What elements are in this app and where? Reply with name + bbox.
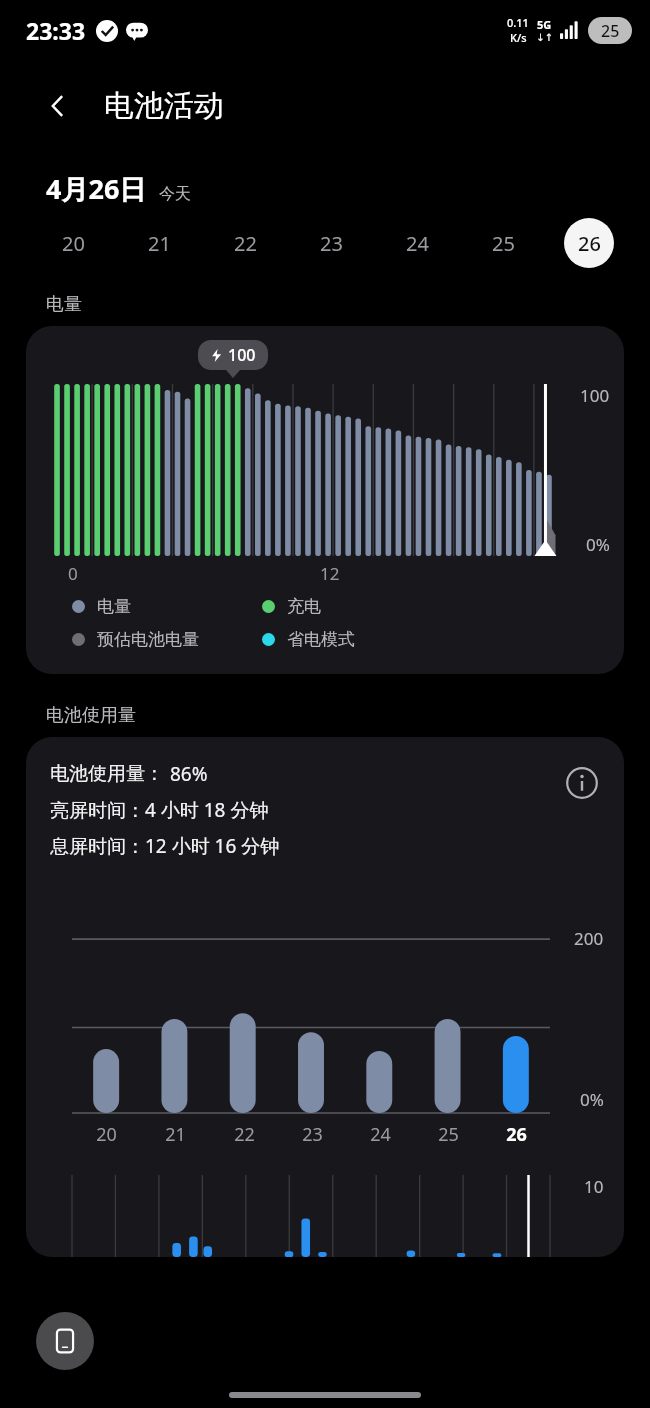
button[interactable]: 电池使用量： (26, 737, 624, 1257)
staticText: 电池活动 (104, 87, 224, 125)
staticText: 25 (601, 20, 620, 42)
button[interactable]: 26 (546, 215, 632, 271)
staticText: 电池使用量 (46, 704, 136, 727)
staticText: 0% (586, 533, 610, 556)
staticText: 4月26日 (46, 170, 147, 207)
staticText: 21 (165, 1122, 186, 1147)
staticText: 25 (438, 1122, 459, 1147)
staticText: 24 (370, 1122, 391, 1147)
staticText: 电量 (46, 293, 82, 316)
staticText: 今天 (159, 184, 191, 204)
staticText: 200 (574, 927, 604, 950)
staticText: K/s (510, 30, 527, 45)
staticText: 26 (578, 230, 601, 257)
staticText: 26 (506, 1122, 527, 1147)
staticText: 12 (320, 562, 340, 585)
staticText: 20 (96, 1122, 117, 1147)
button[interactable]: 100 (26, 326, 624, 674)
staticText: 23 (302, 1122, 323, 1147)
staticText: 22 (234, 1122, 255, 1147)
button[interactable]: 24 (374, 215, 460, 271)
staticText: 86% (170, 761, 208, 787)
staticText: 0.11 (507, 15, 529, 30)
staticText: 24 (406, 230, 429, 257)
staticText: 电量 (97, 596, 131, 617)
button[interactable]: Back (34, 82, 82, 130)
staticText: 充电 (287, 596, 321, 617)
staticText: 息屏时间：12 小时 16 分钟 (50, 833, 280, 859)
staticText: 21 (148, 230, 171, 257)
button[interactable]: 25 (460, 215, 546, 271)
staticText: 10 (584, 1175, 604, 1198)
staticText: 23:33 (26, 15, 86, 46)
staticText: 22 (234, 230, 257, 257)
staticText: 20 (62, 230, 85, 257)
staticText: 电池使用量： (50, 762, 164, 786)
button[interactable]: Info (560, 761, 604, 805)
staticText: 省电模式 (287, 629, 355, 650)
staticText: 预估电池电量 (97, 629, 199, 650)
staticText: 23 (320, 230, 343, 257)
staticText: 5G (537, 17, 552, 32)
button[interactable]: 22 (202, 215, 288, 271)
staticText: ↓↑ (536, 32, 553, 44)
button[interactable]: 21 (116, 215, 202, 271)
button[interactable]: Device (36, 1312, 94, 1370)
staticText: 100 (580, 384, 610, 407)
staticText: 25 (492, 230, 515, 257)
staticText: 亮屏时间：4 小时 18 分钟 (50, 797, 269, 823)
button[interactable]: 23 (288, 215, 374, 271)
staticText: 100 (228, 344, 256, 366)
button[interactable]: 20 (30, 215, 116, 271)
staticText: 0% (580, 1088, 604, 1111)
staticText: 0 (68, 562, 78, 585)
